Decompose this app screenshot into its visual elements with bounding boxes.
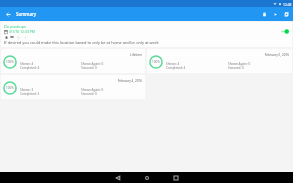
button[interactable]: February 5, 2016 [147,49,292,73]
staticText: Shown: 3 [20,88,34,92]
button[interactable]: Navigate up [4,10,12,18]
staticText: Shown Again: 0 [228,62,251,66]
button[interactable]: Lifetime [1,49,145,73]
staticText: February 4, 2016 [117,79,142,83]
staticText: Snoozed: 0 [81,92,97,96]
staticText: Completed: 4 [20,66,40,70]
button[interactable]: Delete [259,9,270,20]
staticText: 12:43 [283,2,292,6]
button[interactable]: Delete [4,35,8,39]
button[interactable]: Home [141,172,152,183]
staticText: 100% [6,86,14,90]
button[interactable]: Enabled [280,29,289,34]
button[interactable]: Duplicate [281,9,292,20]
button[interactable]: Recent apps [170,172,181,183]
staticText: 100% [152,60,160,64]
staticText: Completed: 3 [20,92,40,96]
button[interactable]: Favorite [16,35,20,39]
staticText: Snoozed: 0 [81,66,97,70]
button[interactable]: Preview [10,35,14,39]
button[interactable]: More [23,35,27,39]
staticText: Completed: 4 [166,66,186,70]
staticText: Summary [16,11,37,17]
staticText: 3/1/16 12:33 PM [9,29,35,34]
staticText: Do pushups [4,24,26,29]
button[interactable]: February 4, 2016 [1,75,145,99]
staticText: Shown: 4 [166,62,180,66]
staticText: Shown Again: 0 [81,88,104,92]
button[interactable]: Do pushups [1,22,292,47]
staticText: February 5, 2016 [264,53,289,57]
staticText: Shown Again: 0 [81,62,104,66]
staticText: 100% [6,60,14,64]
staticText: If desired you could make this location … [4,40,159,45]
button[interactable]: Play [270,9,281,20]
staticText: Lifetime [130,53,142,57]
staticText: Snoozed: 0 [228,66,244,70]
button[interactable]: Back [112,172,123,183]
staticText: Shown: 4 [20,62,34,66]
